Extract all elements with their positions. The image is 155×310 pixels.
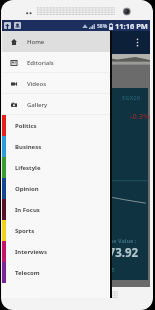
- staticText: 2015: [102, 266, 115, 273]
- staticText: Opinion: [15, 185, 39, 193]
- staticText: Interviews: [15, 248, 47, 256]
- staticText: Telecom: [15, 269, 40, 277]
- staticText: Videos: [27, 80, 47, 88]
- button[interactable]: Gallery: [2, 94, 110, 115]
- button[interactable]: Telecom: [2, 262, 110, 283]
- button[interactable]: Opinion: [2, 178, 110, 199]
- button[interactable]: Videos: [2, 73, 110, 94]
- staticText: In Focus: [15, 206, 40, 214]
- staticText: Gallery: [27, 101, 48, 109]
- staticText: Business: [15, 143, 42, 151]
- staticText: -0.3%: [130, 111, 150, 121]
- button[interactable]: More options: [133, 35, 142, 50]
- staticText: 273.92: [102, 245, 139, 261]
- button[interactable]: Editorials: [2, 52, 110, 73]
- staticText: Home: [27, 38, 45, 46]
- button[interactable]: In Focus: [2, 199, 110, 220]
- staticText: Politics: [15, 122, 37, 130]
- button[interactable]: Lifestyle: [2, 157, 110, 178]
- button[interactable]: Business: [2, 136, 110, 157]
- staticText: EGX20: [122, 94, 140, 102]
- staticText: 11:16 PM: [115, 21, 148, 31]
- staticText: Editorials: [27, 59, 54, 67]
- button[interactable]: Home: [2, 31, 110, 52]
- staticText: 58%: [97, 23, 108, 30]
- staticText: Sports: [15, 227, 35, 235]
- button[interactable]: Interviews: [2, 241, 110, 262]
- staticText: Close Value :: [102, 237, 137, 244]
- staticText: Lifestyle: [15, 164, 41, 172]
- button[interactable]: Sports: [2, 220, 110, 241]
- button[interactable]: Politics: [2, 115, 110, 136]
